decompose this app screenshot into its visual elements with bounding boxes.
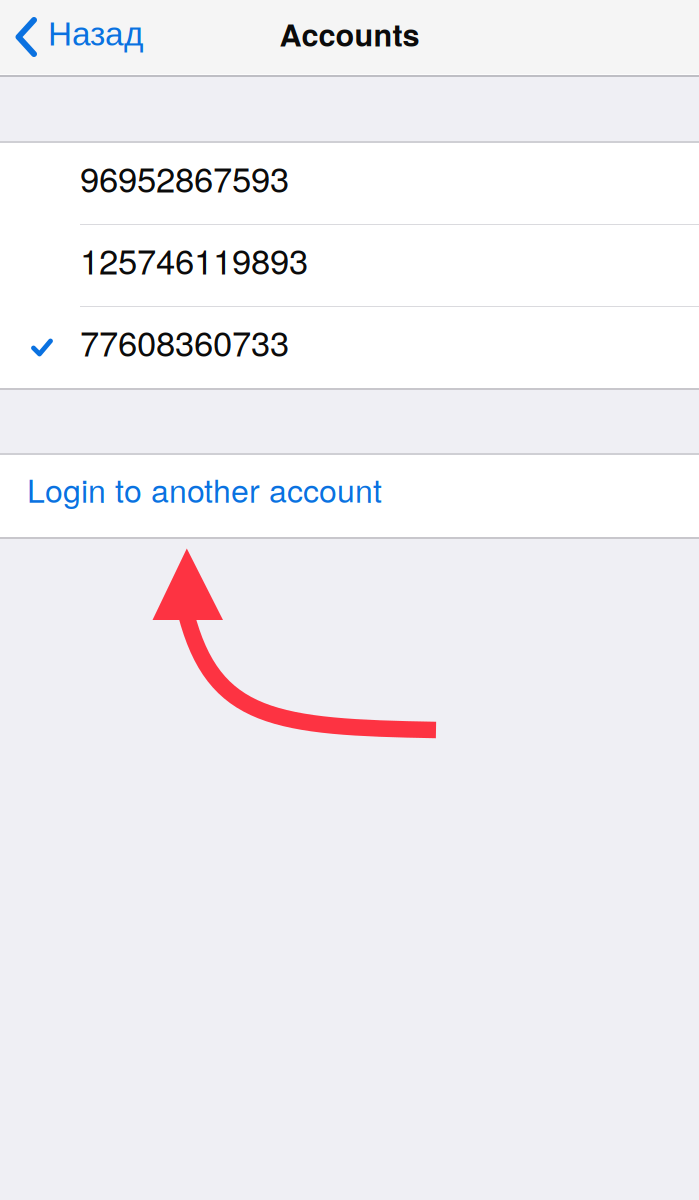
staticText: 77608360733 [80, 317, 289, 366]
staticText: 96952867593 [80, 153, 289, 202]
staticText: Назад [48, 15, 143, 53]
staticText: Login to another account [27, 466, 382, 512]
button[interactable]: 77608360733 [0, 307, 699, 388]
button[interactable]: Назад [0, 0, 155, 74]
button[interactable]: 125746119893 [0, 225, 699, 306]
staticText: Accounts [279, 12, 419, 56]
button[interactable]: Login to another account [0, 455, 699, 537]
button[interactable]: 96952867593 [0, 143, 699, 224]
staticText: 125746119893 [80, 235, 308, 284]
